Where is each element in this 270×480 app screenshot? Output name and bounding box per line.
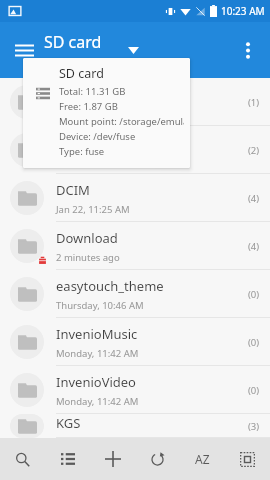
staticText: InvenioMusic — [56, 325, 138, 343]
staticText: (3) — [248, 420, 260, 433]
button[interactable]: Open navigation drawer — [6, 32, 42, 68]
staticText: (4) — [248, 192, 260, 205]
staticText: InvenioVideo — [56, 373, 136, 391]
staticText: (2) — [248, 144, 260, 157]
staticText: DCIM — [56, 181, 90, 199]
staticText: Monday, 11:42 AM — [56, 347, 139, 360]
staticText: (1) — [248, 96, 260, 109]
button[interactable]: Add — [90, 438, 135, 480]
staticText: data — [56, 133, 84, 151]
button[interactable]: easytouch_theme — [0, 270, 270, 318]
button[interactable]: Select — [225, 438, 270, 480]
staticText: (0) — [248, 384, 260, 397]
staticText: Free: 1.87 GB — [59, 100, 118, 113]
button[interactable]: DCIM — [0, 174, 270, 222]
staticText: Type: fuse — [59, 145, 105, 158]
button[interactable]: Search — [0, 438, 45, 480]
staticText: (0) — [248, 336, 260, 349]
staticText: Device: /dev/fuse — [59, 130, 136, 143]
staticText: Jan 22, 6:45 AM — [56, 107, 125, 120]
staticText: Download — [56, 229, 118, 247]
staticText: Jan 22, 7:04 AM — [56, 155, 125, 168]
button[interactable]: InvenioMusic — [0, 318, 270, 366]
staticText: Mount point: /storage/emulated/0 — [59, 115, 184, 128]
button[interactable]: KGS — [0, 414, 270, 438]
staticText: KGS — [56, 414, 81, 432]
staticText: Jan 22, 11:25 AM — [56, 203, 130, 216]
button[interactable]: Download — [0, 222, 270, 270]
staticText: (4) — [248, 240, 260, 253]
button[interactable]: Sort A to Z — [180, 438, 225, 480]
button[interactable]: SD card — [23, 58, 190, 168]
button[interactable]: InvenioVideo — [0, 366, 270, 414]
staticText: Monday, 9:10 AM — [56, 436, 133, 438]
button[interactable]: Refresh — [135, 438, 180, 480]
button[interactable]: Spotify — [0, 78, 270, 126]
staticText: 10:23 AM — [221, 4, 265, 18]
button[interactable]: Change storage — [118, 35, 148, 65]
staticText: SD card — [44, 31, 102, 53]
staticText: 38 folders, 3 files — [56, 55, 136, 69]
button[interactable]: More options — [230, 32, 266, 68]
staticText: Spotify — [56, 85, 99, 103]
staticText: Thursday, 10:46 AM — [56, 299, 144, 312]
staticText: SD card — [59, 65, 104, 82]
button[interactable]: data — [0, 126, 270, 174]
staticText: easytouch_theme — [56, 277, 164, 295]
staticText: 2 minutes ago — [56, 251, 120, 264]
staticText: Total: 11.31 GB — [59, 85, 126, 98]
staticText: (0) — [248, 288, 260, 301]
staticText: Monday, 11:42 AM — [56, 395, 139, 408]
staticText: AZ — [195, 451, 210, 467]
button[interactable]: List view — [45, 438, 90, 480]
